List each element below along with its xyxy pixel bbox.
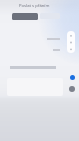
button[interactable] [12, 13, 38, 20]
button[interactable]: Send [70, 75, 75, 80]
button[interactable]: More [69, 86, 75, 92]
button[interactable]: Options [67, 31, 75, 53]
staticText: Poslat s přáním [19, 3, 50, 9]
